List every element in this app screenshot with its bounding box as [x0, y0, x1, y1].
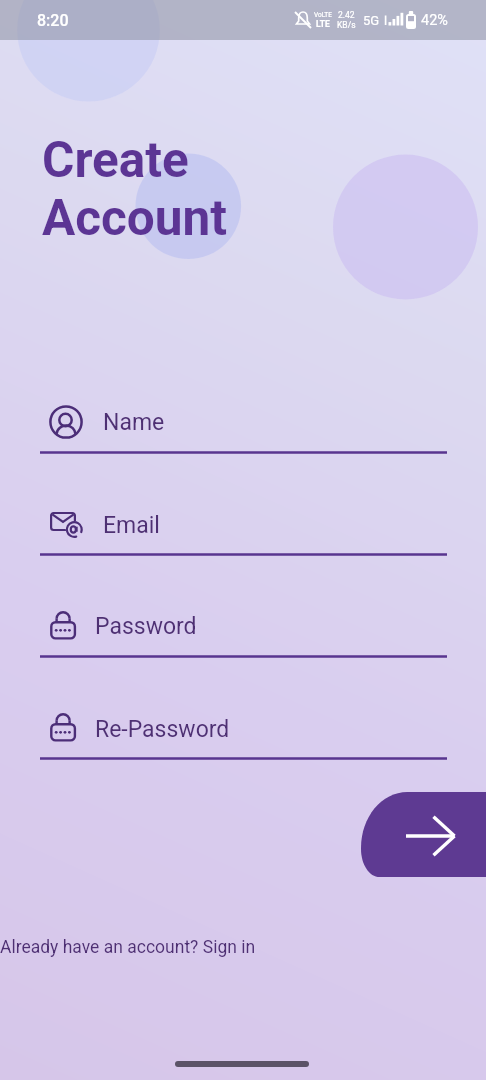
button[interactable]: Password: [40, 599, 447, 658]
staticText: Password: [95, 613, 197, 640]
staticText: 2.42: [338, 10, 355, 20]
staticText: 8:20: [37, 11, 69, 30]
button[interactable]: Re-Password: [40, 701, 447, 760]
button[interactable]: Name: [40, 396, 447, 454]
staticText: 5G: [363, 13, 380, 28]
staticText: Create: [42, 131, 189, 189]
button[interactable]: Already have an account? Sign in: [0, 937, 256, 958]
button[interactable]: Next: [361, 792, 486, 877]
staticText: Account: [42, 189, 227, 247]
staticText: 42%: [421, 12, 448, 29]
button[interactable]: Email: [40, 497, 447, 556]
staticText: Already have an account? Sign in: [0, 937, 256, 958]
staticText: Email: [103, 512, 160, 539]
staticText: KB/s: [337, 20, 356, 30]
staticText: Name: [103, 409, 165, 436]
staticText: LTE: [316, 19, 330, 29]
staticText: Re-Password: [95, 716, 230, 743]
staticText: VoLTE: [314, 11, 332, 19]
